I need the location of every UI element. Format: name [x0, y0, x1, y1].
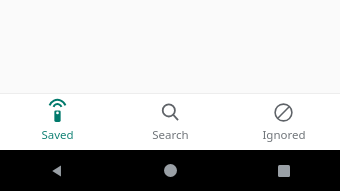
- staticText: Search: [152, 127, 189, 143]
- button[interactable]: Search: [114, 94, 227, 150]
- button[interactable]: Saved: [0, 94, 114, 150]
- button[interactable]: Home: [114, 150, 227, 191]
- staticText: Ignored: [262, 127, 306, 143]
- button[interactable]: Ignored: [227, 94, 340, 150]
- staticText: Saved: [41, 127, 74, 143]
- button[interactable]: Recent apps: [227, 150, 340, 191]
- button[interactable]: Back: [0, 150, 114, 191]
